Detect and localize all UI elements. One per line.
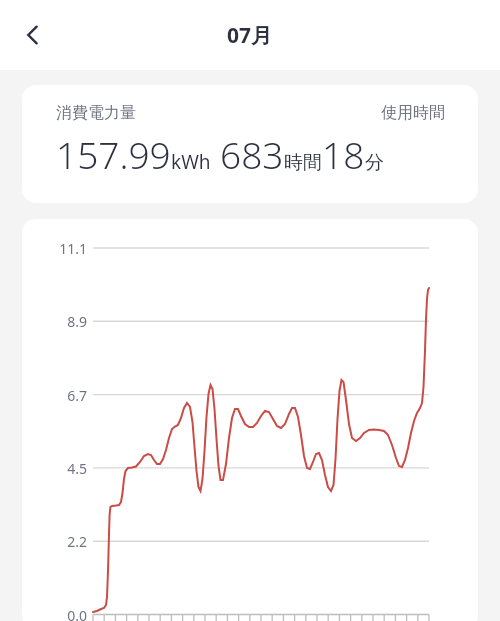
button[interactable]: 11.1 xyxy=(22,219,478,621)
staticText: 4.5 xyxy=(42,459,87,478)
staticText: 157.99 xyxy=(56,129,171,179)
button[interactable]: Back xyxy=(10,12,56,58)
staticText: kWh xyxy=(171,149,211,175)
staticText: 07月 xyxy=(227,21,273,50)
staticText: 6.7 xyxy=(42,386,87,405)
staticText: 消費電力量 xyxy=(56,103,136,123)
staticText: 18 xyxy=(322,129,365,179)
staticText: 2.2 xyxy=(42,532,87,551)
staticText: 8.9 xyxy=(42,312,87,331)
staticText: 683 xyxy=(220,129,284,179)
staticText: 11.1 xyxy=(42,239,87,258)
staticText: 0.0 xyxy=(42,606,87,621)
staticText: 使用時間 xyxy=(381,103,445,123)
staticText: 分 xyxy=(365,151,384,175)
button[interactable]: 消費電力量 xyxy=(22,85,478,203)
staticText: 時間 xyxy=(284,151,322,175)
